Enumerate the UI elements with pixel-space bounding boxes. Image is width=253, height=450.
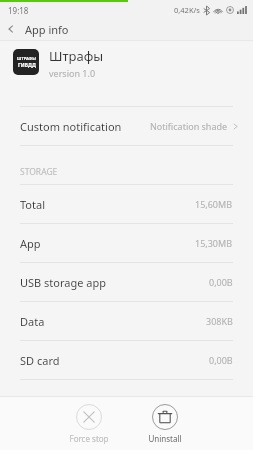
button[interactable]: Force stop [58,402,120,446]
button[interactable]: ШТРАФЫ [0,41,253,106]
staticText: Force stop [69,433,109,444]
staticText: Штрафы [49,47,104,65]
staticText: SD card [20,353,60,368]
button[interactable]: App [0,224,253,262]
staticText: version 1.0 [49,67,96,79]
staticText: 19:18 [8,5,29,16]
button[interactable]: Uninstall [134,402,196,446]
staticText: USB storage app [20,275,107,290]
staticText: Uninstall [148,433,182,444]
staticText: Total [20,197,45,212]
staticText: App info [25,22,69,37]
button[interactable]: USB storage app [0,263,253,301]
staticText: 0,00B [209,354,233,366]
button[interactable]: Back [0,18,22,40]
staticText: 15,30MB [195,237,233,249]
staticText: 0,00B [209,276,233,288]
staticText: Data [20,314,45,329]
staticText: STORAGE [20,166,58,178]
staticText: App [20,236,41,251]
staticText: ШТРАФЫ [17,56,36,61]
button[interactable]: Data [0,302,253,340]
staticText: 15,60MB [195,198,233,210]
staticText: Custom notification [20,119,122,134]
staticText: 308KB [206,315,233,327]
button[interactable]: SD card [0,341,253,379]
staticText: Notification shade [150,120,228,132]
button[interactable]: Custom notification [0,107,253,145]
staticText: ГИБДД [18,62,36,69]
button[interactable]: Total [0,185,253,223]
staticText: 0,42K/s [174,5,200,15]
